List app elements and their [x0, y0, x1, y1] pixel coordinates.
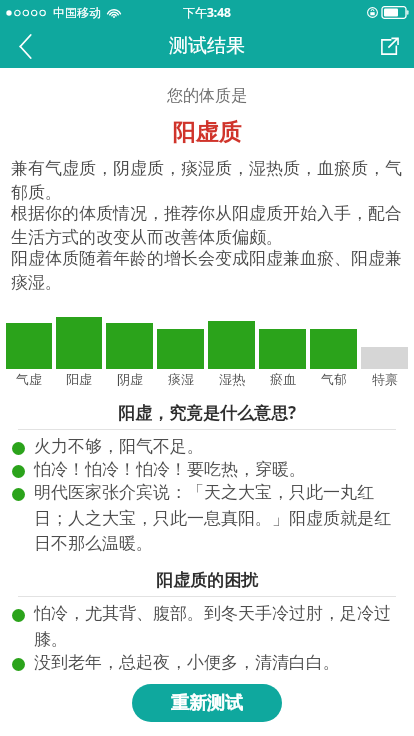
staticText: 测试结果	[169, 34, 245, 58]
staticText: 阳虚质的困扰	[0, 570, 414, 591]
staticText: 火力不够，阳气不足。	[34, 436, 204, 457]
staticText: 阴虚	[117, 371, 143, 387]
staticText: 阳虚，究竟是什么意思?	[0, 401, 414, 424]
staticText: 中国移动	[53, 5, 101, 20]
staticText: 阳虚体质随着年龄的增长会变成阳虚兼血瘀、阳虚兼痰湿。	[11, 248, 403, 293]
button[interactable]: Back	[0, 24, 50, 68]
staticText: 怕冷！怕冷！怕冷！要吃热，穿暖。	[34, 459, 306, 480]
button[interactable]: Share	[364, 24, 414, 68]
staticText: 湿热	[219, 371, 245, 387]
staticText: 瘀血	[270, 371, 296, 387]
staticText: 气郁	[321, 371, 347, 387]
staticText: 重新测试	[171, 692, 243, 715]
staticText: 阳虚质	[0, 118, 414, 147]
staticText: 怕冷，尤其背、腹部。到冬天手冷过肘，足冷过膝。	[34, 603, 398, 650]
staticText: 明代医家张介宾说：「天之大宝，只此一丸红日；人之大宝，只此一息真阳。」阳虚质就是…	[34, 482, 398, 554]
staticText: 没到老年，总起夜，小便多，清清白白。	[34, 652, 340, 673]
staticText: 下午3:48	[183, 4, 231, 20]
staticText: 特禀	[372, 371, 398, 387]
staticText: 阳虚	[66, 371, 92, 387]
staticText: 兼有气虚质，阴虚质，痰湿质，湿热质，血瘀质，气郁质。	[11, 158, 403, 203]
staticText: 您的体质是	[0, 86, 414, 106]
staticText: 根据你的体质情况，推荐你从阳虚质开始入手，配合生活方式的改变从而改善体质偏颇。	[11, 203, 403, 248]
staticText: 痰湿	[168, 371, 194, 387]
staticText: 气虚	[16, 371, 42, 387]
button[interactable]: 重新测试	[132, 684, 282, 722]
